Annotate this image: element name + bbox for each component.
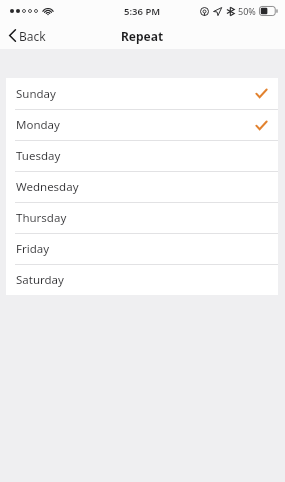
button[interactable]: Thursday (6, 202, 278, 233)
button[interactable]: Sunday (6, 78, 278, 109)
staticText: 5:36 PM (124, 5, 161, 18)
staticText: Friday (16, 241, 50, 257)
button[interactable]: Tuesday (6, 140, 278, 171)
button[interactable]: Monday (6, 109, 278, 140)
staticText: Thursday (16, 210, 67, 226)
staticText: Tuesday (16, 148, 61, 164)
button[interactable]: Back (0, 22, 56, 49)
staticText: Wednesday (16, 179, 79, 195)
staticText: Monday (16, 117, 60, 133)
staticText: 50% (238, 5, 256, 17)
staticText: Sunday (16, 86, 56, 102)
staticText: Repeat (121, 28, 164, 44)
button[interactable]: Wednesday (6, 171, 278, 202)
staticText: Saturday (16, 272, 64, 288)
button[interactable]: Friday (6, 233, 278, 264)
button[interactable]: Saturday (6, 264, 278, 295)
staticText: Back (19, 28, 46, 44)
